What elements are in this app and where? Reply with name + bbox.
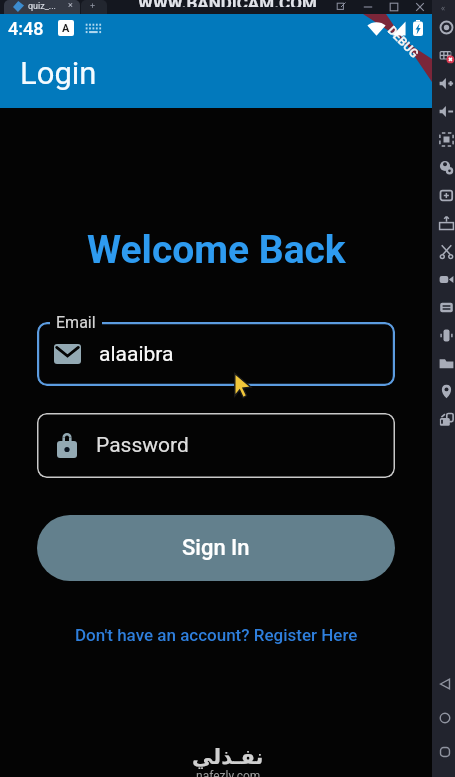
staticText: DEBUG (385, 23, 422, 61)
staticText: quiz_... (28, 1, 56, 12)
button[interactable]: dpi (439, 216, 454, 231)
button[interactable]: phone (439, 328, 454, 343)
button[interactable]: plus (439, 188, 454, 203)
button[interactable]: Home (438, 711, 452, 725)
button[interactable]: Collapse (442, 2, 452, 12)
staticText: Sign In (182, 535, 250, 561)
staticText: Don't have an account? Register Here (75, 625, 358, 645)
staticText: nafezly.com (196, 769, 261, 777)
staticText: WWW.BANDICAM.COM (138, 0, 317, 7)
button[interactable]: folder (439, 356, 454, 371)
staticText: نفـذلي (192, 745, 264, 769)
button[interactable] (4, 0, 80, 14)
staticText: Password (96, 433, 189, 458)
staticText: Login (20, 55, 97, 91)
button[interactable]: Don't have an account? Register Here (69, 621, 364, 649)
button[interactable]: video (439, 272, 454, 287)
button[interactable]: Close (415, 2, 425, 12)
button[interactable]: pin (439, 384, 454, 399)
button[interactable]: power (439, 20, 454, 35)
staticText: 4:48 (8, 18, 44, 39)
staticText: Email (56, 313, 96, 332)
button[interactable]: volup (439, 76, 454, 91)
button[interactable]: Restore (336, 2, 346, 12)
button[interactable]: Maximise (389, 2, 399, 12)
button[interactable]: scissors (439, 244, 454, 259)
button[interactable]: Sign In (37, 515, 395, 581)
button[interactable]: voldn (439, 104, 454, 119)
staticText: « (441, 2, 446, 13)
button[interactable]: camx (439, 48, 454, 63)
staticText: alaaibra (99, 342, 174, 367)
button[interactable]: pie (439, 160, 454, 175)
button[interactable] (81, 0, 107, 14)
staticText: A (62, 22, 70, 35)
button[interactable]: transfer (439, 300, 454, 315)
button[interactable]: Back (438, 677, 452, 691)
button[interactable]: Minimise (363, 2, 373, 12)
button[interactable]: more (439, 412, 454, 427)
button[interactable]: Password (37, 413, 395, 478)
staticText: + (90, 1, 96, 12)
staticText: × (68, 0, 73, 11)
button[interactable]: Recents (438, 745, 452, 759)
staticText: Welcome Back (87, 227, 346, 273)
button[interactable]: alaaibra (37, 322, 395, 386)
button[interactable]: rotate (439, 132, 454, 147)
